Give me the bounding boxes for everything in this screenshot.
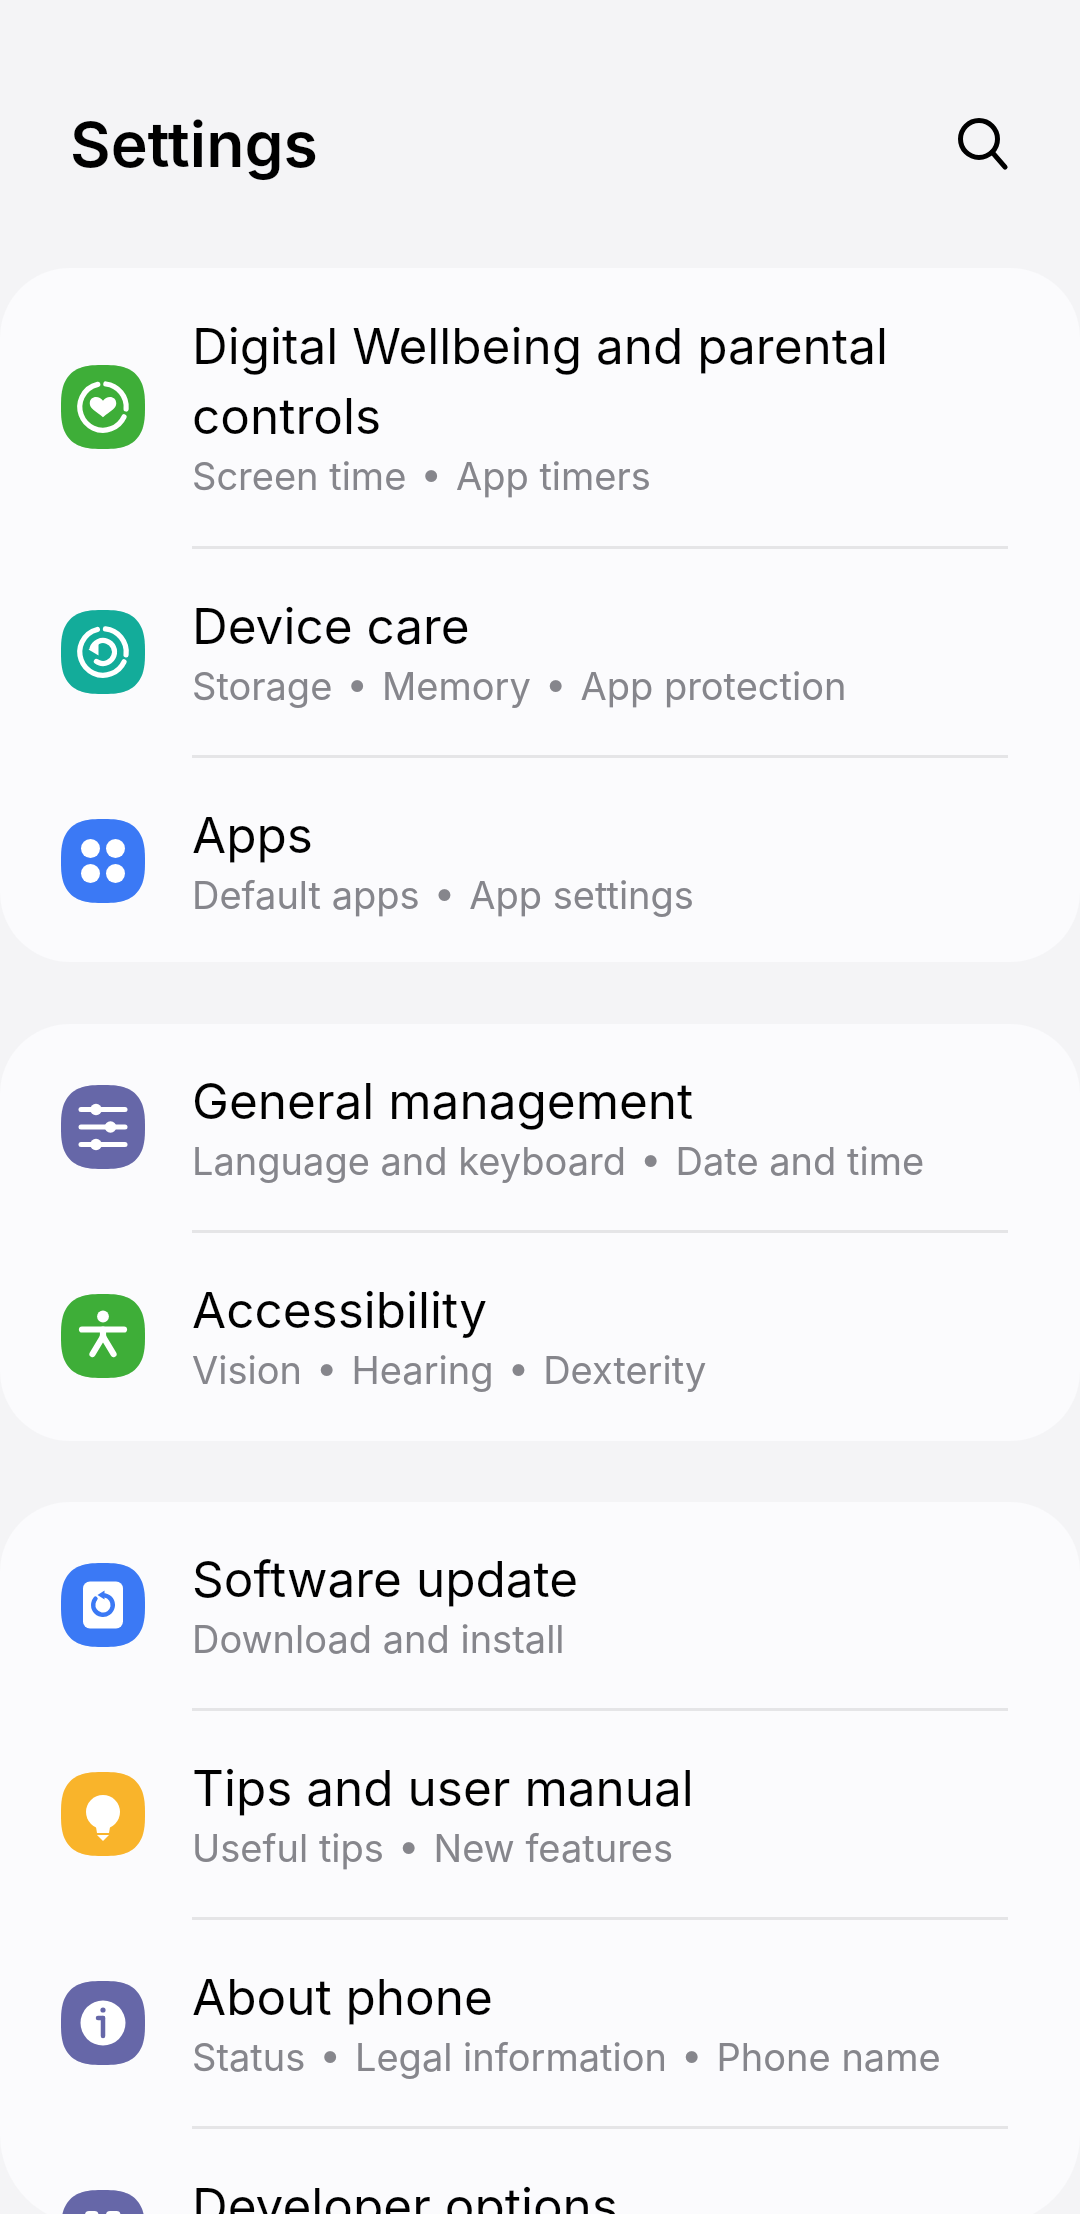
button[interactable]: About phone (0, 1920, 1080, 2126)
button[interactable]: Accessibility (0, 1233, 1080, 1439)
staticText: Download and install (192, 1611, 565, 1664)
staticText: Digital Wellbeing and parental controls (192, 308, 1008, 448)
staticText: Settings (70, 106, 318, 182)
staticText: Software update (192, 1541, 579, 1611)
staticText: Default apps • App settings (192, 867, 694, 920)
staticText: Vision • Hearing • Dexterity (192, 1342, 707, 1395)
staticText: Device care (192, 588, 470, 658)
button[interactable]: Apps (0, 758, 1080, 962)
staticText: Accessibility (192, 1272, 488, 1342)
staticText: Useful tips • New features (192, 1820, 674, 1873)
staticText: Apps (192, 797, 313, 867)
staticText: Status • Legal information • Phone name (192, 2029, 941, 2082)
staticText: Language and keyboard • Date and time (192, 1133, 925, 1186)
button[interactable]: Developer options (0, 2129, 1080, 2214)
button[interactable]: Search (934, 94, 1024, 184)
staticText: Tips and user manual (192, 1750, 694, 1820)
button[interactable]: Tips and user manual (0, 1711, 1080, 1917)
button[interactable]: Software update (0, 1502, 1080, 1708)
staticText: About phone (192, 1959, 493, 2029)
staticText: General management (192, 1063, 694, 1133)
button[interactable]: Device care (0, 549, 1080, 755)
button[interactable]: General management (0, 1024, 1080, 1230)
button[interactable]: Digital Wellbeing and parental controls (0, 268, 1080, 546)
staticText: Screen time • App timers (192, 448, 651, 501)
staticText: Storage • Memory • App protection (192, 658, 847, 711)
staticText: Developer options (192, 2168, 618, 2214)
